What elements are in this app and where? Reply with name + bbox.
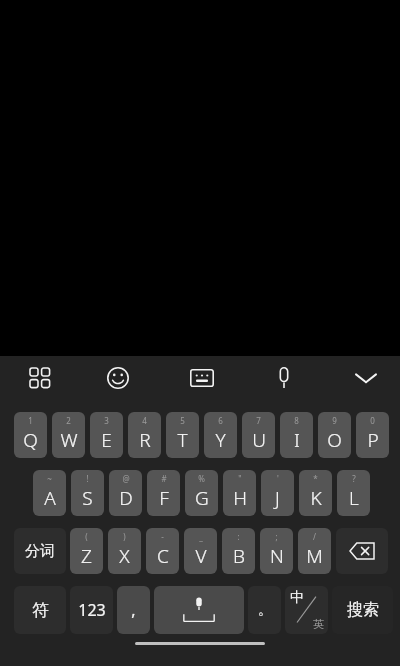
staticText: K xyxy=(310,485,322,511)
staticText: D xyxy=(119,485,133,511)
staticText: I xyxy=(294,427,300,453)
staticText: Q xyxy=(23,427,38,453)
staticText: C xyxy=(157,543,169,569)
staticText: , xyxy=(131,599,136,621)
staticText: R xyxy=(139,427,151,453)
staticText: * xyxy=(313,473,318,484)
staticText: 6 xyxy=(218,415,223,426)
button[interactable]: Keyboard layout xyxy=(180,356,224,400)
button[interactable]: 8 xyxy=(280,412,313,458)
staticText: 1 xyxy=(28,415,33,426)
staticText: ! xyxy=(86,473,89,484)
button[interactable]: , xyxy=(117,586,150,634)
staticText: 123 xyxy=(78,599,106,621)
staticText: 4 xyxy=(142,415,147,426)
button[interactable]: 6 xyxy=(204,412,237,458)
button[interactable]: ? xyxy=(337,470,370,516)
button[interactable]: 符 xyxy=(14,586,66,634)
staticText: Y xyxy=(215,427,226,453)
button[interactable]: Backspace xyxy=(336,528,388,574)
button[interactable]: " xyxy=(223,470,256,516)
button[interactable]: 123 xyxy=(70,586,113,634)
button[interactable]: 0 xyxy=(356,412,389,458)
staticText: E xyxy=(101,427,112,453)
staticText: - xyxy=(161,531,164,542)
staticText: V xyxy=(195,543,207,569)
staticText: W xyxy=(60,427,78,453)
staticText: H xyxy=(233,485,247,511)
button[interactable]: 搜索 xyxy=(332,586,393,634)
staticText: ) xyxy=(123,531,126,542)
staticText: N xyxy=(270,543,284,569)
button[interactable]: % xyxy=(185,470,218,516)
staticText: 5 xyxy=(180,415,185,426)
button[interactable]: 分词 xyxy=(14,528,66,574)
staticText: U xyxy=(252,427,266,453)
staticText: 符 xyxy=(32,600,49,621)
staticText: 。 xyxy=(258,601,272,619)
button[interactable]: ; xyxy=(260,528,293,574)
button[interactable]: Hide keyboard xyxy=(344,356,388,400)
staticText: S xyxy=(82,485,93,511)
staticText: ? xyxy=(352,473,356,484)
staticText: : xyxy=(237,531,240,542)
staticText: 9 xyxy=(332,415,337,426)
button[interactable]: # xyxy=(147,470,180,516)
staticText: 8 xyxy=(294,415,299,426)
staticText: # xyxy=(161,473,167,484)
staticText: G xyxy=(195,485,209,511)
staticText: A xyxy=(44,485,56,511)
button[interactable]: 3 xyxy=(90,412,123,458)
staticText: J xyxy=(275,485,280,511)
button[interactable]: _ xyxy=(184,528,217,574)
staticText: 3 xyxy=(104,415,109,426)
staticText: / xyxy=(313,531,316,542)
staticText: O xyxy=(327,427,342,453)
button[interactable]: 9 xyxy=(318,412,351,458)
button[interactable]: 7 xyxy=(242,412,275,458)
button[interactable]: 5 xyxy=(166,412,199,458)
button[interactable]: Apps xyxy=(18,356,62,400)
button[interactable]: ~ xyxy=(33,470,66,516)
staticText: _ xyxy=(199,531,203,542)
button[interactable]: 2 xyxy=(52,412,85,458)
button[interactable]: ! xyxy=(71,470,104,516)
button[interactable]: Voice input xyxy=(262,356,306,400)
staticText: F xyxy=(159,485,169,511)
staticText: L xyxy=(349,485,359,511)
staticText: % xyxy=(198,473,205,484)
staticText: ~ xyxy=(47,473,52,484)
staticText: Z xyxy=(81,543,92,569)
button[interactable]: - xyxy=(146,528,179,574)
button[interactable]: Space xyxy=(154,586,244,634)
staticText: 英 xyxy=(313,617,324,631)
button[interactable]: ) xyxy=(108,528,141,574)
staticText: ; xyxy=(275,531,278,542)
button[interactable]: : xyxy=(222,528,255,574)
staticText: B xyxy=(233,543,245,569)
staticText: ( xyxy=(85,531,88,542)
staticText: 0 xyxy=(370,415,375,426)
staticText: P xyxy=(367,427,379,453)
staticText: 搜索 xyxy=(347,600,379,620)
button[interactable]: ' xyxy=(261,470,294,516)
button[interactable]: Chinese English toggle xyxy=(285,586,328,634)
staticText: 2 xyxy=(66,415,71,426)
staticText: ' xyxy=(277,473,279,484)
button[interactable]: 。 xyxy=(248,586,281,634)
staticText: T xyxy=(177,427,188,453)
button[interactable]: ( xyxy=(70,528,103,574)
staticText: X xyxy=(119,543,130,569)
staticText: 中 xyxy=(290,589,304,607)
staticText: 7 xyxy=(256,415,261,426)
button[interactable]: * xyxy=(299,470,332,516)
button[interactable]: @ xyxy=(109,470,142,516)
staticText: 分词 xyxy=(25,542,55,561)
button[interactable]: 4 xyxy=(128,412,161,458)
staticText: @ xyxy=(122,473,130,484)
staticText: " xyxy=(238,473,242,484)
staticText: M xyxy=(306,543,323,569)
button[interactable]: 1 xyxy=(14,412,47,458)
button[interactable]: / xyxy=(298,528,331,574)
button[interactable]: Emoji xyxy=(96,356,140,400)
